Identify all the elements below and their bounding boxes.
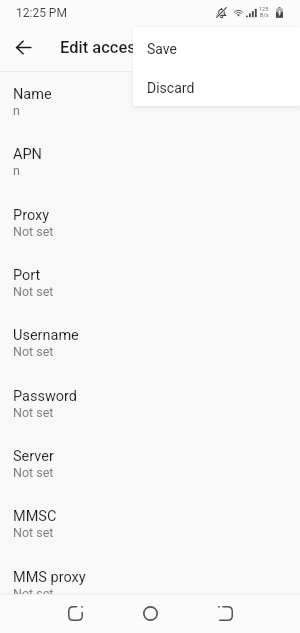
button[interactable]: Recents bbox=[52, 594, 98, 632]
button[interactable]: Password bbox=[0, 380, 300, 440]
button[interactable]: Navigate up bbox=[5, 29, 42, 66]
staticText: APN bbox=[13, 146, 42, 163]
button[interactable]: MMS proxy bbox=[0, 561, 300, 621]
staticText: Not set bbox=[13, 405, 54, 420]
button[interactable]: Proxy bbox=[0, 199, 300, 259]
staticText: Not set bbox=[13, 525, 54, 540]
staticText: Not set bbox=[13, 586, 54, 601]
button[interactable]: Server bbox=[0, 440, 300, 500]
staticText: Server bbox=[13, 448, 54, 465]
staticText: Edit access point bbox=[60, 38, 186, 57]
staticText: Not set bbox=[13, 344, 54, 359]
staticText: MMSC bbox=[13, 508, 57, 525]
button[interactable]: APN bbox=[0, 138, 300, 198]
staticText: Discard bbox=[147, 80, 195, 96]
button[interactable]: Save bbox=[133, 28, 300, 69]
staticText: Not set bbox=[13, 224, 54, 239]
button[interactable]: Home bbox=[127, 594, 173, 632]
button[interactable]: Name bbox=[0, 78, 300, 138]
staticText: Proxy bbox=[13, 207, 50, 224]
staticText: n bbox=[13, 103, 20, 118]
staticText: Username bbox=[13, 327, 79, 344]
staticText: 12:25 PM bbox=[16, 6, 67, 20]
button[interactable]: MMSC bbox=[0, 500, 300, 560]
staticText: Port bbox=[13, 267, 41, 284]
staticText: Password bbox=[13, 388, 78, 405]
staticText: Save bbox=[147, 41, 177, 57]
button[interactable]: Username bbox=[0, 319, 300, 379]
staticText: MMS proxy bbox=[13, 569, 86, 586]
button[interactable]: Port bbox=[0, 259, 300, 319]
button[interactable]: Back bbox=[202, 594, 248, 632]
staticText: 125 bbox=[259, 6, 269, 12]
staticText: Name bbox=[13, 86, 52, 103]
staticText: Not set bbox=[13, 284, 54, 299]
staticText: n bbox=[13, 163, 20, 178]
button[interactable]: Discard bbox=[133, 69, 300, 106]
staticText: B/s bbox=[260, 12, 269, 18]
staticText: Not set bbox=[13, 465, 54, 480]
